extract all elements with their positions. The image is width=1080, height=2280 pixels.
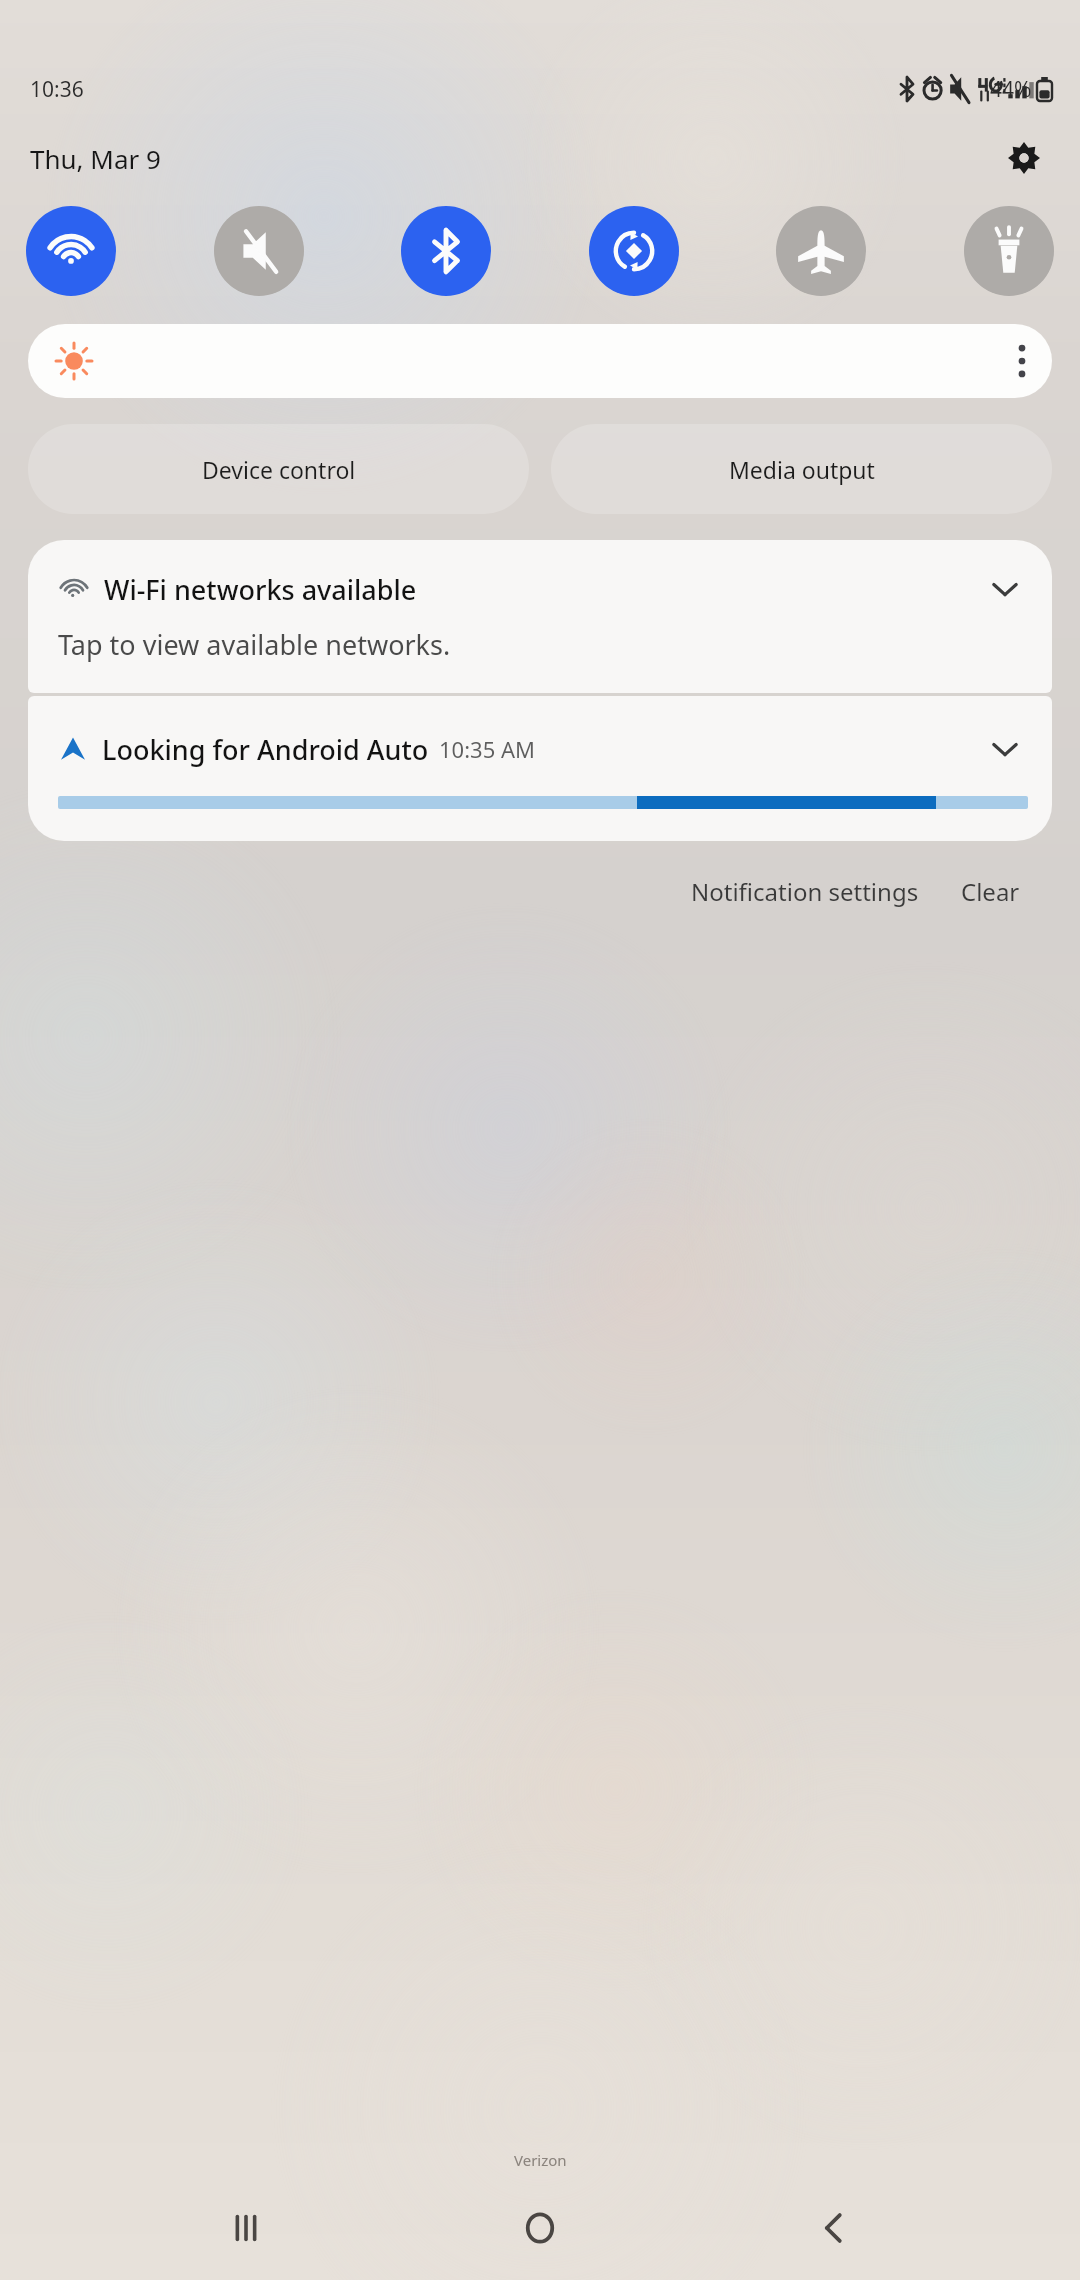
button[interactable]: Flashlight xyxy=(964,206,1054,296)
button[interactable]: Back xyxy=(786,2180,882,2276)
button[interactable]: Sound off xyxy=(214,206,304,296)
button[interactable]: Expand Wi-Fi notification xyxy=(982,566,1028,612)
staticText: Thu, Mar 9 xyxy=(30,141,161,176)
button[interactable]: Notification settings xyxy=(683,867,927,916)
button[interactable]: Wi-Fi networks available xyxy=(28,540,1052,693)
staticText: Clear xyxy=(961,875,1020,908)
button[interactable]: Expand Android Auto notification xyxy=(982,726,1028,772)
staticText: Media output xyxy=(729,454,875,485)
button[interactable]: Media output xyxy=(551,424,1052,514)
button[interactable]: Looking for Android Auto xyxy=(28,696,1052,841)
staticText: Wi-Fi networks available xyxy=(104,571,417,608)
staticText: Notification settings xyxy=(691,875,919,908)
button[interactable]: Airplane mode xyxy=(776,206,866,296)
button[interactable]: Device control xyxy=(28,424,529,514)
button[interactable]: Brightness xyxy=(28,324,1052,398)
staticText: Device control xyxy=(202,454,356,485)
button[interactable]: Settings xyxy=(998,132,1050,184)
button[interactable]: Bluetooth xyxy=(401,206,491,296)
button[interactable]: Auto rotate xyxy=(589,206,679,296)
button[interactable]: Recent apps xyxy=(198,2180,294,2276)
button[interactable]: Wi-Fi xyxy=(26,206,116,296)
staticText: 44% xyxy=(990,75,1032,104)
staticText: 10:36 xyxy=(30,75,84,104)
button[interactable]: Clear xyxy=(953,867,1028,916)
staticText: Tap to view available networks. xyxy=(58,626,451,663)
button[interactable]: Home xyxy=(492,2180,588,2276)
staticText: Looking for Android Auto xyxy=(102,731,429,768)
staticText: 10:35 AM xyxy=(439,734,535,764)
staticText: Verizon xyxy=(514,2150,567,2170)
